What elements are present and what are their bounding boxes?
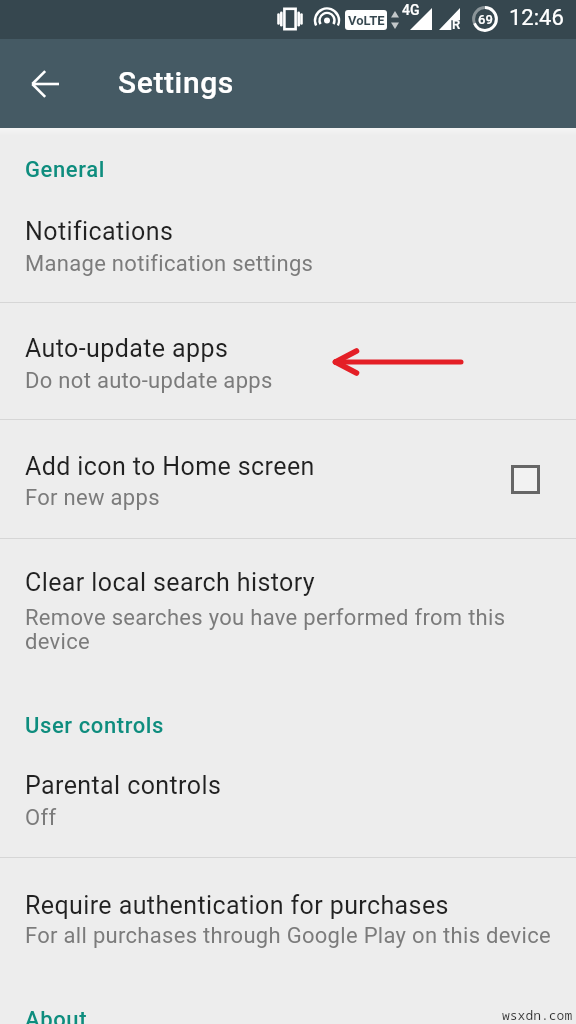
button[interactable]: Require authentication for purchases	[0, 858, 576, 980]
button[interactable]: Clear local search history	[0, 539, 576, 674]
staticText: Do not auto-update apps	[25, 368, 576, 394]
staticText: Auto-update apps	[25, 334, 565, 363]
button[interactable]: Add icon to Home screen	[0, 420, 576, 538]
staticText: VoLTE	[348, 13, 385, 28]
button[interactable]: Auto-update apps	[0, 303, 576, 419]
staticText: wsxdn.com	[502, 1006, 573, 1024]
staticText: Settings	[118, 65, 234, 100]
button[interactable]: Back	[22, 61, 68, 107]
staticText: Remove searches you have performed from …	[25, 605, 520, 654]
staticText: 12:46	[509, 5, 564, 31]
staticText: Off	[25, 805, 576, 831]
staticText: Notifications	[25, 217, 565, 246]
staticText: Parental controls	[25, 771, 565, 800]
staticText: User controls	[25, 713, 576, 739]
staticText: For new apps	[25, 485, 576, 511]
staticText: About	[25, 1007, 576, 1024]
button[interactable]: Parental controls	[0, 752, 576, 857]
staticText: General	[25, 157, 576, 183]
button[interactable]: Add icon to Home screen checkbox	[503, 457, 547, 501]
button[interactable]: Notifications	[0, 195, 576, 302]
staticText: R	[452, 17, 461, 32]
staticText: 4G	[402, 2, 420, 18]
staticText: Require authentication for purchases	[25, 891, 565, 920]
staticText: Add icon to Home screen	[25, 452, 565, 481]
staticText: Clear local search history	[25, 568, 565, 597]
staticText: 69	[478, 12, 493, 27]
staticText: Manage notification settings	[25, 251, 576, 277]
staticText: For all purchases through Google Play on…	[25, 923, 576, 949]
